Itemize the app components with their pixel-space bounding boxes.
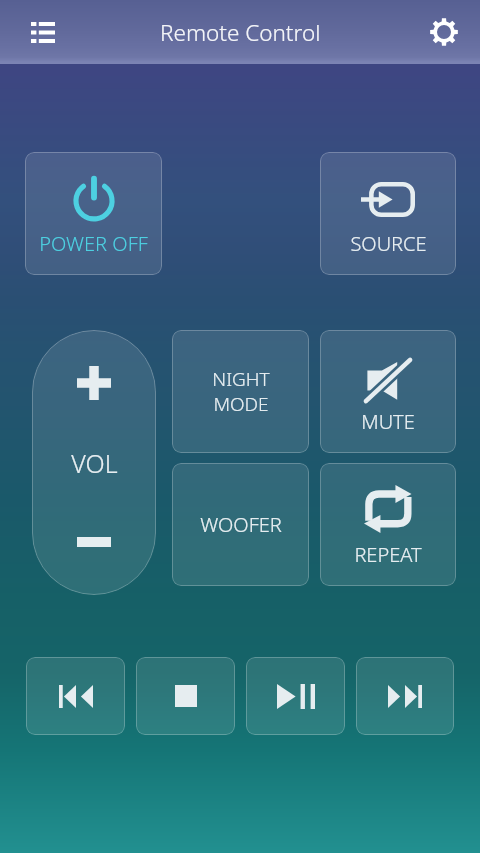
button[interactable]: Next track	[356, 657, 454, 735]
staticText: SOURCE	[350, 230, 427, 257]
button[interactable]: Menu	[21, 10, 65, 54]
button[interactable]: Volume up	[32, 330, 156, 436]
staticText: MUTE	[361, 408, 415, 435]
button[interactable]: Power off	[25, 152, 162, 275]
button[interactable]: Repeat	[320, 463, 456, 586]
button[interactable]: Play or pause	[246, 657, 345, 735]
button[interactable]: Woofer	[172, 463, 309, 586]
button[interactable]: Source	[320, 152, 456, 275]
button[interactable]: Stop	[136, 657, 235, 735]
button[interactable]: Settings	[422, 10, 466, 54]
button[interactable]: Night mode	[172, 330, 309, 453]
staticText: VOL	[71, 446, 118, 480]
button[interactable]: Volume down	[32, 489, 156, 595]
button[interactable]: Mute	[320, 330, 456, 453]
staticText: Remote Control	[160, 17, 321, 48]
staticText: NIGHT MODE	[212, 366, 270, 417]
staticText: POWER OFF	[39, 230, 148, 257]
staticText: WOOFER	[200, 511, 282, 538]
button[interactable]: Previous track	[26, 657, 125, 735]
staticText: REPEAT	[354, 541, 422, 568]
